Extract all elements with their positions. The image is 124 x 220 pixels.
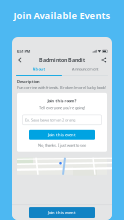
staticText: Join Available Events: [13, 9, 110, 22]
staticText: Ex. Saya bawa teman 2 orang: [25, 117, 75, 122]
staticText: No, thanks. I just want to see: [38, 143, 86, 148]
button[interactable]: Back: [15, 55, 25, 64]
staticText: 4:51 PM: [16, 49, 30, 54]
staticText: Description: [17, 79, 40, 84]
staticText: Announcement: [72, 66, 98, 72]
button[interactable]: No, thanks. I just want to see: [38, 143, 86, 148]
button[interactable]: Announcement: [62, 65, 108, 76]
staticText: About: [32, 66, 45, 72]
staticText: Join this event: [48, 210, 76, 215]
staticText: Fun corrine with friends. Broken (more) …: [17, 85, 106, 90]
staticText: Join this event: [48, 132, 76, 137]
staticText: Badminton Bandit: [39, 56, 85, 64]
staticText: Tell everyone you're going!: [39, 105, 85, 110]
staticText: Join this room?: [47, 98, 76, 103]
button[interactable]: Join this event: [29, 130, 95, 140]
button[interactable]: Join this event: [29, 207, 95, 218]
button[interactable]: About: [16, 65, 62, 76]
button[interactable]: Share: [99, 55, 109, 64]
